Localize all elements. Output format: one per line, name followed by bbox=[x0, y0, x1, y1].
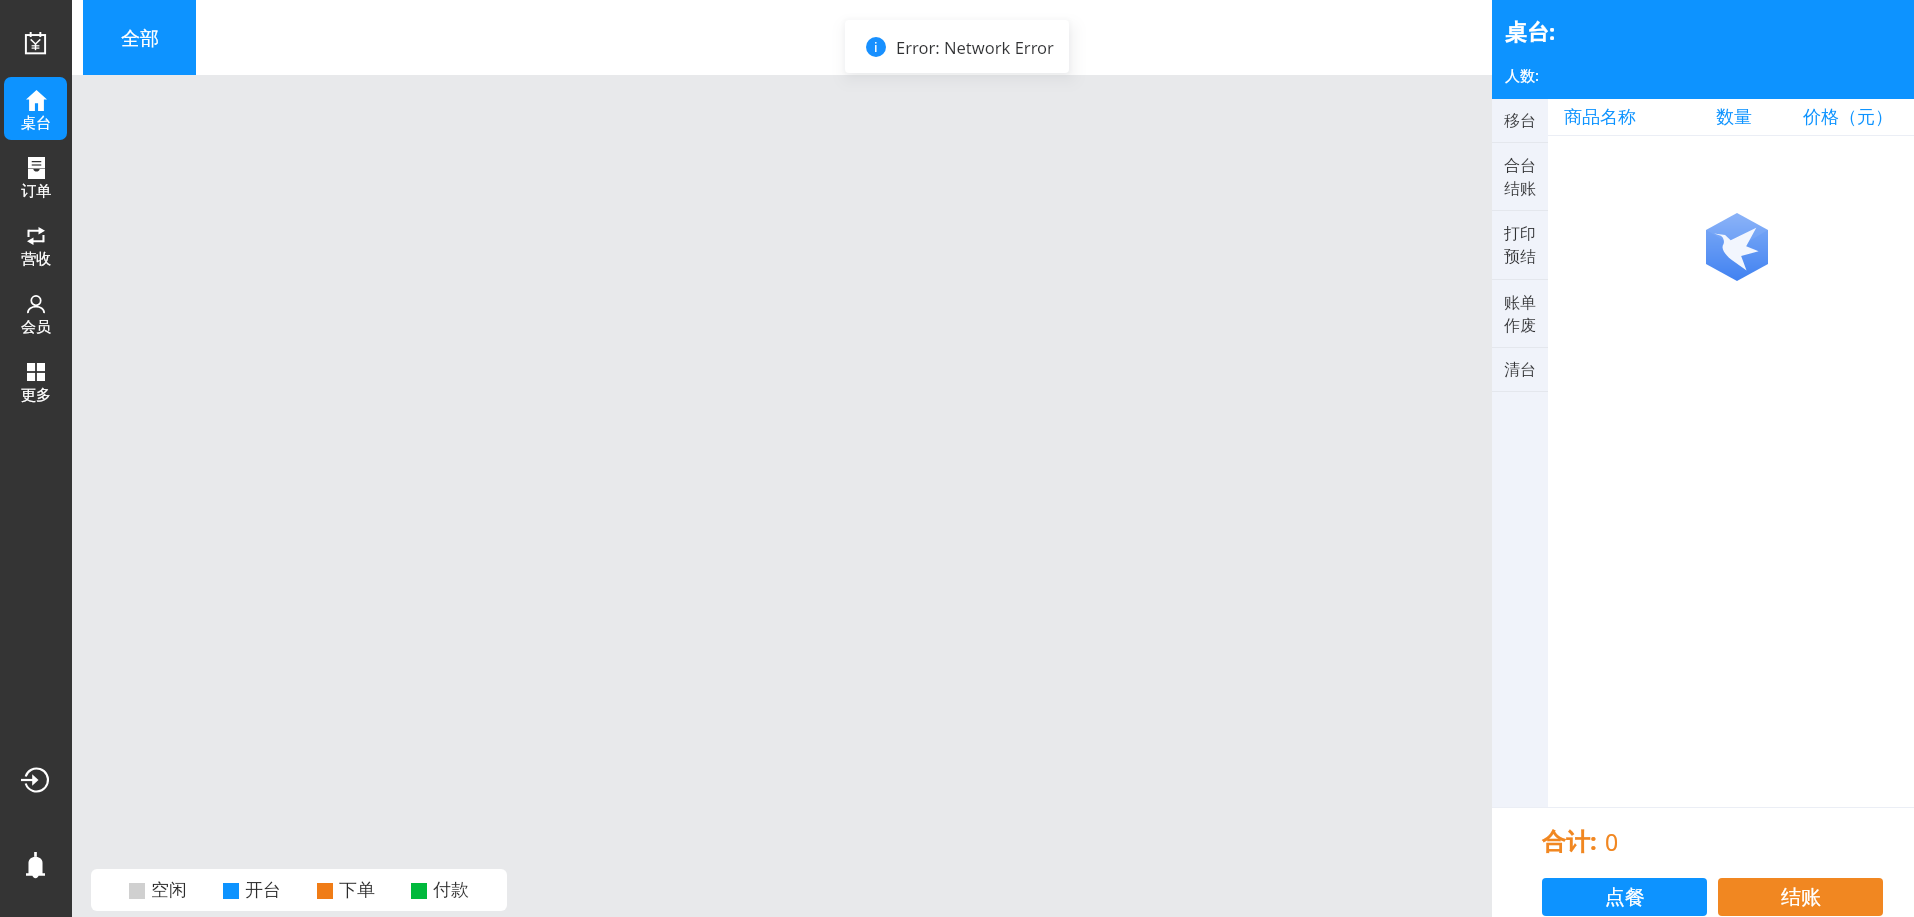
button[interactable]: 移台 bbox=[1492, 99, 1548, 143]
staticText: 数量 bbox=[1716, 106, 1752, 129]
button[interactable]: 会员 bbox=[4, 281, 67, 344]
staticText: i bbox=[874, 38, 878, 56]
staticText: 移台 bbox=[1504, 111, 1536, 131]
staticText: 开台 bbox=[245, 879, 281, 902]
button[interactable]: 日结 bbox=[0, 0, 71, 74]
staticText: 合计: bbox=[1542, 824, 1597, 857]
staticText: 合台 结账 bbox=[1504, 156, 1536, 199]
staticText: 价格（元） bbox=[1803, 106, 1893, 129]
button[interactable]: 点餐 bbox=[1542, 878, 1707, 916]
button[interactable]: 账单 作废 bbox=[1492, 280, 1548, 348]
staticText: 全部 bbox=[121, 27, 159, 51]
staticText: 打印 预结 bbox=[1504, 224, 1536, 267]
staticText: 商品名称 bbox=[1564, 106, 1636, 129]
staticText: 空闲 bbox=[151, 879, 187, 902]
staticText: 点餐 bbox=[1605, 885, 1645, 910]
staticText: Error: Network Error bbox=[896, 36, 1054, 58]
staticText: 结账 bbox=[1781, 885, 1821, 910]
button[interactable]: 清台 bbox=[1492, 348, 1548, 392]
button[interactable]: 合台 结账 bbox=[1492, 143, 1548, 211]
button[interactable]: 退出登录 bbox=[0, 750, 71, 810]
button[interactable]: 结账 bbox=[1718, 878, 1883, 916]
staticText: 会员 bbox=[21, 318, 51, 337]
staticText: 下单 bbox=[339, 879, 375, 902]
staticText: 清台 bbox=[1504, 360, 1536, 380]
staticText: 付款 bbox=[433, 879, 469, 902]
staticText: 人数: bbox=[1505, 65, 1540, 85]
staticText: 订单 bbox=[21, 182, 51, 201]
button[interactable]: 桌台 bbox=[4, 77, 67, 140]
staticText: 更多 bbox=[21, 386, 51, 405]
staticText: 桌台 bbox=[21, 114, 51, 133]
button[interactable]: 打印 预结 bbox=[1492, 211, 1548, 280]
button[interactable]: 订单 bbox=[4, 145, 67, 208]
staticText: 0 bbox=[1605, 826, 1619, 857]
button[interactable]: 更多 bbox=[4, 349, 67, 412]
button[interactable]: 全部 bbox=[83, 0, 196, 75]
button[interactable]: 营收 bbox=[4, 213, 67, 276]
staticText: 账单 作废 bbox=[1504, 293, 1536, 336]
staticText: 桌台: bbox=[1505, 16, 1556, 46]
button[interactable]: 通知 bbox=[0, 838, 71, 890]
staticText: 营收 bbox=[21, 250, 51, 269]
